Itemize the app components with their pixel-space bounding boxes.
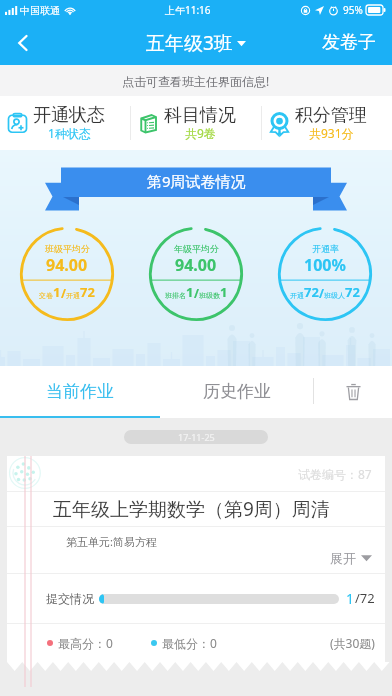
button[interactable]: 展开 xyxy=(330,550,372,566)
staticText: 点击可查看班主任界面信息! xyxy=(122,73,270,89)
button[interactable]: 当前作业 xyxy=(0,366,160,416)
staticText: 94.00 xyxy=(46,254,88,276)
button[interactable]: 发卷子 xyxy=(306,20,392,65)
staticText: 开通 xyxy=(290,291,304,300)
staticText: 上午11:16 xyxy=(165,3,211,17)
button[interactable]: Back xyxy=(0,20,46,65)
staticText: 72 xyxy=(345,283,360,301)
staticText: 班级人 xyxy=(324,291,345,300)
staticText: 最低分：0 xyxy=(162,635,217,651)
staticText: 班级数 xyxy=(199,291,220,300)
staticText: 科目情况 xyxy=(164,104,236,127)
staticText: 95% xyxy=(343,3,363,17)
staticText: 中国联通 xyxy=(20,4,60,17)
staticText: 班排名 xyxy=(165,291,186,300)
staticText: 历史作业 xyxy=(203,381,271,402)
button[interactable]: 历史作业 xyxy=(160,366,313,416)
staticText: 积分管理 xyxy=(295,104,367,127)
staticText: 五年级上学期数学（第9周）周清 xyxy=(53,496,330,522)
staticText: 最高分：0 xyxy=(58,635,113,651)
staticText: 试卷编号：87 xyxy=(298,466,372,482)
staticText: 共9卷 xyxy=(185,125,216,141)
staticText: 1 xyxy=(53,283,61,301)
staticText: 100% xyxy=(304,254,346,276)
staticText: 开通 xyxy=(66,291,80,300)
staticText: 1种状态 xyxy=(48,125,91,141)
button[interactable]: 积分管理 xyxy=(262,96,392,150)
staticText: 72 xyxy=(304,283,319,301)
staticText: 17-11-25 xyxy=(178,431,215,443)
staticText: 开通率 xyxy=(312,243,339,254)
staticText: 共931分 xyxy=(309,125,354,141)
staticText: 1 xyxy=(186,283,194,301)
button[interactable]: 五年级3班 xyxy=(146,30,246,56)
staticText: 展开 xyxy=(330,550,356,566)
button[interactable]: 开通状态 xyxy=(0,96,130,150)
staticText: / xyxy=(194,285,199,301)
staticText: 第五单元:简易方程 xyxy=(66,534,157,549)
staticText: 年级平均分 xyxy=(174,243,219,254)
staticText: 94.00 xyxy=(175,254,217,276)
staticText: / xyxy=(319,285,324,301)
staticText: 当前作业 xyxy=(46,381,114,402)
staticText: 提交情况 xyxy=(46,591,94,606)
staticText: 交卷 xyxy=(39,291,53,300)
staticText: 五年级3班 xyxy=(146,30,233,56)
staticText: /72 xyxy=(355,589,375,607)
staticText: 1 xyxy=(220,283,228,301)
staticText: (共30题) xyxy=(330,635,375,651)
staticText: 第9周试卷情况 xyxy=(147,171,246,191)
staticText: / xyxy=(61,285,66,301)
button[interactable]: 科目情况 xyxy=(131,96,261,150)
staticText: 72 xyxy=(80,283,95,301)
button[interactable]: Delete xyxy=(314,366,392,416)
staticText: 班级平均分 xyxy=(45,243,90,254)
staticText: 开通状态 xyxy=(33,104,105,127)
staticText: 发卷子 xyxy=(322,31,376,54)
staticText: 1 xyxy=(346,589,355,608)
